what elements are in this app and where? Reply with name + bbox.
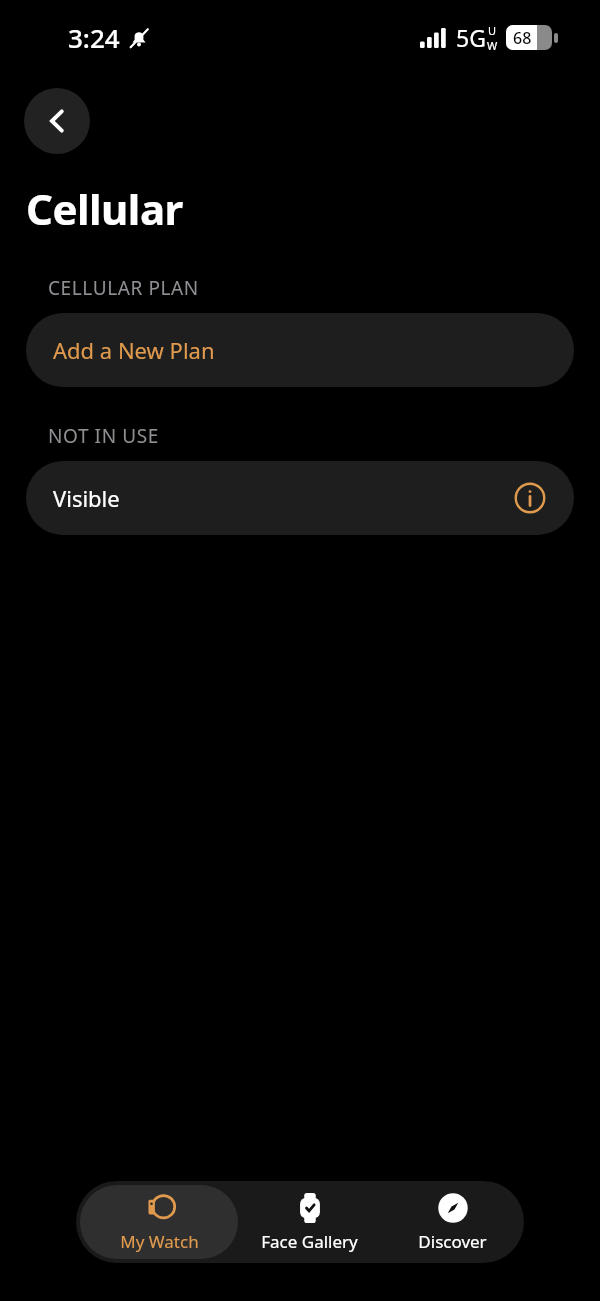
staticText: U [488, 23, 497, 38]
staticText: NOT IN USE [48, 423, 159, 449]
staticText: Visible [53, 483, 120, 513]
staticText: My Watch [120, 1230, 199, 1253]
button[interactable]: Back [24, 88, 90, 154]
staticText: W [487, 38, 498, 53]
staticText: CELLULAR PLAN [48, 275, 199, 301]
button[interactable]: My Watch [80, 1185, 238, 1259]
staticText: 3:24 [68, 20, 120, 55]
staticText: 68 [513, 27, 532, 49]
button[interactable]: Visible [26, 461, 574, 535]
button[interactable]: Face Gallery [238, 1185, 381, 1259]
staticText: Cellular [26, 180, 183, 237]
button[interactable]: Discover [381, 1185, 524, 1259]
staticText: 5G [456, 22, 486, 53]
staticText: Face Gallery [261, 1230, 358, 1253]
button[interactable]: Information [513, 481, 547, 515]
staticText: Add a New Plan [53, 335, 215, 365]
staticText: Discover [418, 1230, 487, 1253]
button[interactable]: Add a New Plan [26, 313, 574, 387]
